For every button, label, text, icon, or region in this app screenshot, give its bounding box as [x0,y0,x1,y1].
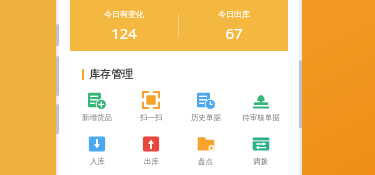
button[interactable]: 历史单据 [178,89,233,124]
other: 历史单据 [197,91,215,109]
button[interactable]: 调拨 [233,133,288,168]
button[interactable]: 扫一扫 [124,89,178,124]
other: 调拨 [252,135,270,153]
staticText: 调拨 [253,157,268,166]
button[interactable]: 出库 [124,133,178,168]
staticText: 今日出库 [218,9,250,19]
button[interactable]: 入库 [70,133,124,168]
other: 待审核单据 [252,91,270,109]
staticText: 历史单据 [191,113,221,122]
staticText: 新增货品 [82,113,112,122]
staticText: 待审核单据 [242,113,280,122]
other: 盘点 [197,135,215,153]
staticText: 库存管理 [89,67,133,81]
other: 扫一扫 [142,91,160,109]
other: 新增货品 [88,91,106,109]
staticText: 入库 [90,157,105,166]
other: 入库 [88,135,106,153]
button[interactable]: 今日出库 [179,9,288,43]
staticText: 124 [111,23,137,43]
button[interactable]: 盘点 [178,133,233,168]
button[interactable]: 待审核单据 [233,89,288,124]
staticText: 盘点 [198,157,213,166]
staticText: 出库 [144,157,159,166]
button[interactable]: 今日有变化 [70,9,178,43]
staticText: 今日有变化 [104,9,144,19]
staticText: 扫一扫 [140,113,163,122]
button[interactable]: 新增货品 [70,89,124,124]
staticText: 67 [225,23,243,43]
other: 出库 [142,135,160,153]
